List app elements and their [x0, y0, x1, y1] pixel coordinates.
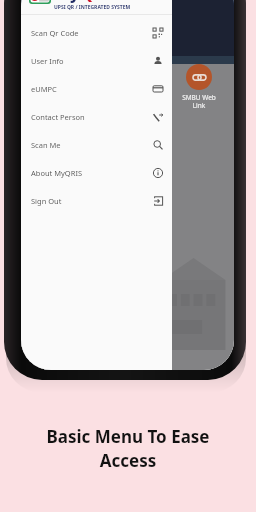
staticText: SMBU Web Link — [182, 93, 216, 110]
staticText: Sign Out — [31, 196, 62, 206]
staticText: UPSI QR / INTEGRATED SYSTEM — [54, 4, 131, 11]
staticText: Scan Me — [31, 140, 61, 150]
staticText: MyQRIS — [54, 0, 121, 4]
staticText: Scan Qr Code — [31, 28, 79, 38]
staticText: eUMPC — [31, 84, 57, 94]
staticText: Basic Menu To Ease Access — [46, 425, 210, 472]
button[interactable]: Scan Me — [21, 131, 172, 159]
button[interactable]: Contact Person — [21, 103, 172, 131]
button[interactable]: User Info — [21, 47, 172, 75]
staticText: Contact Person — [31, 112, 85, 122]
button[interactable]: SMBU Web Link — [171, 64, 227, 110]
button[interactable]: eUMPC — [21, 75, 172, 103]
button[interactable]: Scan Qr Code — [21, 19, 172, 47]
button[interactable]: Sign Out — [21, 187, 172, 215]
staticText: User Info — [31, 56, 64, 66]
button[interactable]: About MyQRIS — [21, 159, 172, 187]
staticText: About MyQRIS — [31, 168, 83, 178]
